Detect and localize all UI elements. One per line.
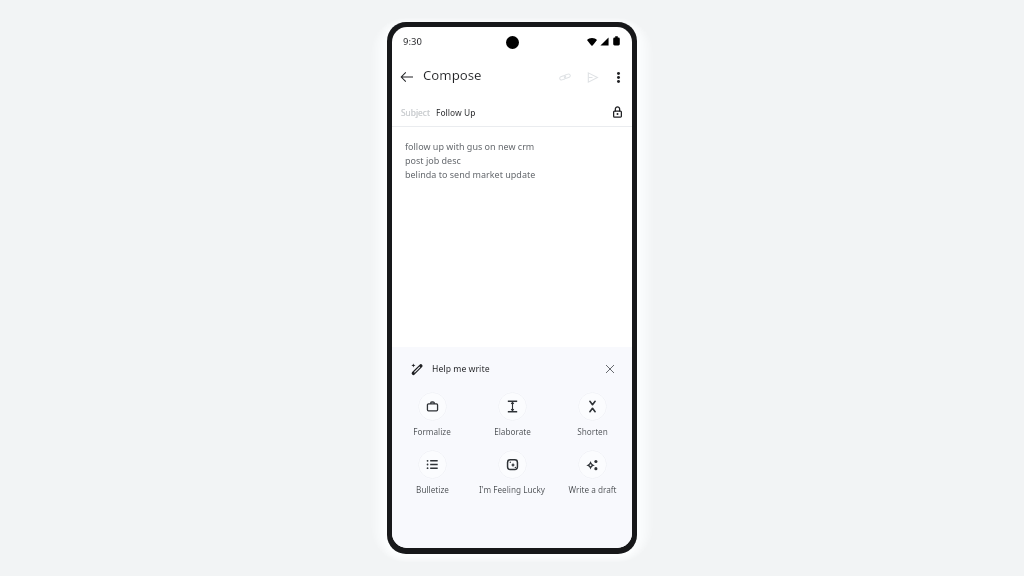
button[interactable]: Send	[582, 67, 602, 87]
button[interactable]: Attach file	[555, 67, 575, 87]
button[interactable]: I'm Feeling Lucky	[472, 450, 552, 495]
staticText: Follow Up	[436, 107, 476, 118]
button[interactable]: More options	[608, 67, 628, 87]
button[interactable]: Subject	[392, 98, 632, 126]
button[interactable]: Bulletize	[392, 450, 472, 495]
staticText: Formalize	[413, 426, 451, 437]
button[interactable]: Write a draft	[552, 450, 632, 495]
staticText: Compose	[423, 66, 482, 84]
button[interactable]: Elaborate	[472, 392, 552, 437]
staticText: Bulletize	[416, 484, 449, 495]
button[interactable]: Close	[600, 359, 620, 379]
staticText: post job desc	[405, 154, 461, 166]
staticText: belinda to send market update	[405, 168, 536, 180]
staticText: I'm Feeling Lucky	[479, 484, 545, 495]
button[interactable]: Back	[397, 67, 417, 87]
staticText: Help me write	[432, 363, 490, 375]
staticText: follow up with gus on new crm	[405, 140, 535, 152]
button[interactable]: Shorten	[552, 392, 632, 437]
button[interactable]: Formalize	[392, 392, 472, 437]
button[interactable]: Confidential mode	[608, 103, 626, 121]
staticText: Elaborate	[494, 426, 531, 437]
staticText: 9:30	[403, 35, 422, 48]
staticText: Write a draft	[568, 484, 617, 495]
staticText: Subject	[401, 107, 430, 118]
staticText: Shorten	[577, 426, 608, 437]
